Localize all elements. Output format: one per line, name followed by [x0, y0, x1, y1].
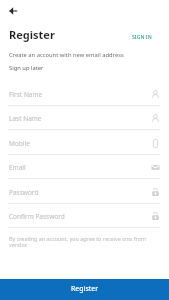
staticText: Register [9, 27, 55, 42]
button[interactable]: Sign up later [9, 64, 44, 72]
button[interactable]: SIGN IN [132, 33, 152, 40]
staticText: SIGN IN [132, 33, 152, 40]
button[interactable]: Last Name [0, 106, 169, 130]
button[interactable]: Email [0, 155, 169, 179]
button[interactable]: First Name [0, 82, 169, 106]
staticText: Email [9, 163, 26, 172]
staticText: Password [9, 188, 39, 197]
button[interactable]: Mobile [0, 131, 169, 155]
staticText: Create an account with new email address [9, 51, 124, 59]
button[interactable]: Password [0, 180, 169, 204]
button[interactable]: Register [0, 279, 169, 300]
button[interactable]: Back [5, 2, 21, 18]
staticText: Last Name [9, 114, 42, 123]
staticText: First Name [9, 90, 43, 99]
staticText: By creating an account, you agree to rec… [9, 235, 149, 249]
staticText: Sign up later [9, 64, 44, 72]
staticText: Confirm Password [9, 212, 65, 221]
staticText: Mobile [9, 139, 30, 148]
button[interactable]: Confirm Password [0, 204, 169, 228]
staticText: Register [71, 284, 99, 294]
